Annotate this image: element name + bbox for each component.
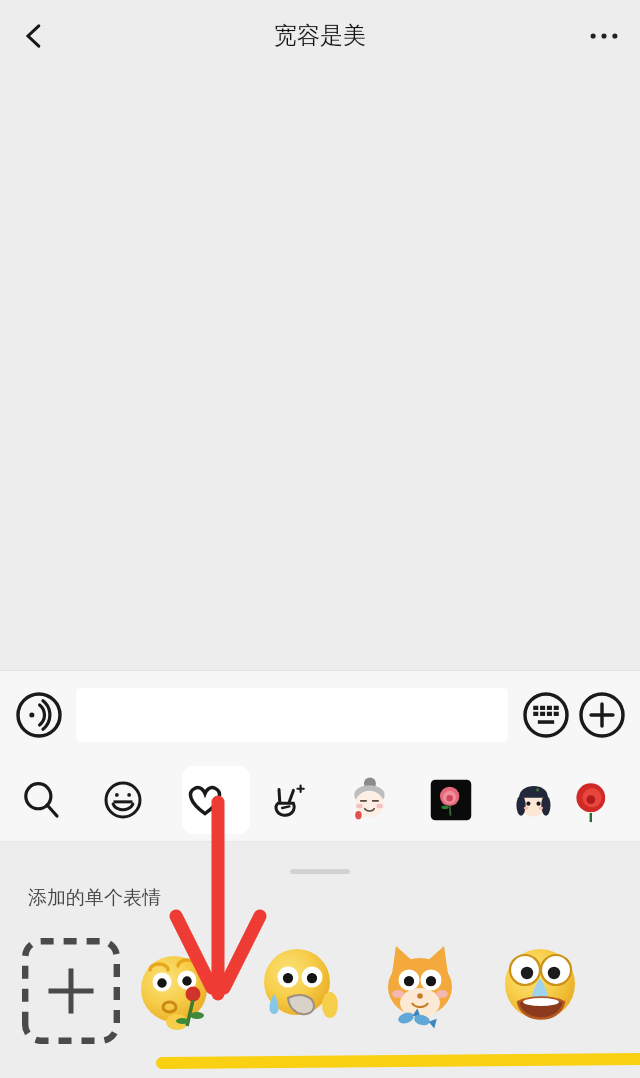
button[interactable]: Gestures [246,759,328,841]
button[interactable]: Laughing tear sticker [480,930,600,1050]
button[interactable]: Sticker pack 3 [492,759,574,841]
button[interactable]: More options [576,8,632,64]
button[interactable]: Shocked crying sticker [240,930,360,1050]
button[interactable]: Sticker pack 4 [574,759,614,841]
button[interactable]: Sticker pack 1 [328,759,410,841]
button[interactable]: More functions [574,687,630,743]
button[interactable]: Sticker pack 2 [410,759,492,841]
button[interactable]: Cat with fish sticker [360,930,480,1050]
button[interactable]: Keyboard [518,687,574,743]
staticText: 添加的单个表情 [28,886,161,910]
staticText: 宽容是美 [274,21,366,50]
button[interactable]: Add sticker [22,932,120,1050]
button[interactable]: Kiss rose sticker [120,930,240,1050]
button[interactable]: Back [6,8,62,64]
button[interactable]: Voice message [10,686,68,744]
button[interactable]: Emoji [82,759,164,841]
button[interactable]: Favorites [164,759,246,841]
button[interactable]: Search [0,759,82,841]
